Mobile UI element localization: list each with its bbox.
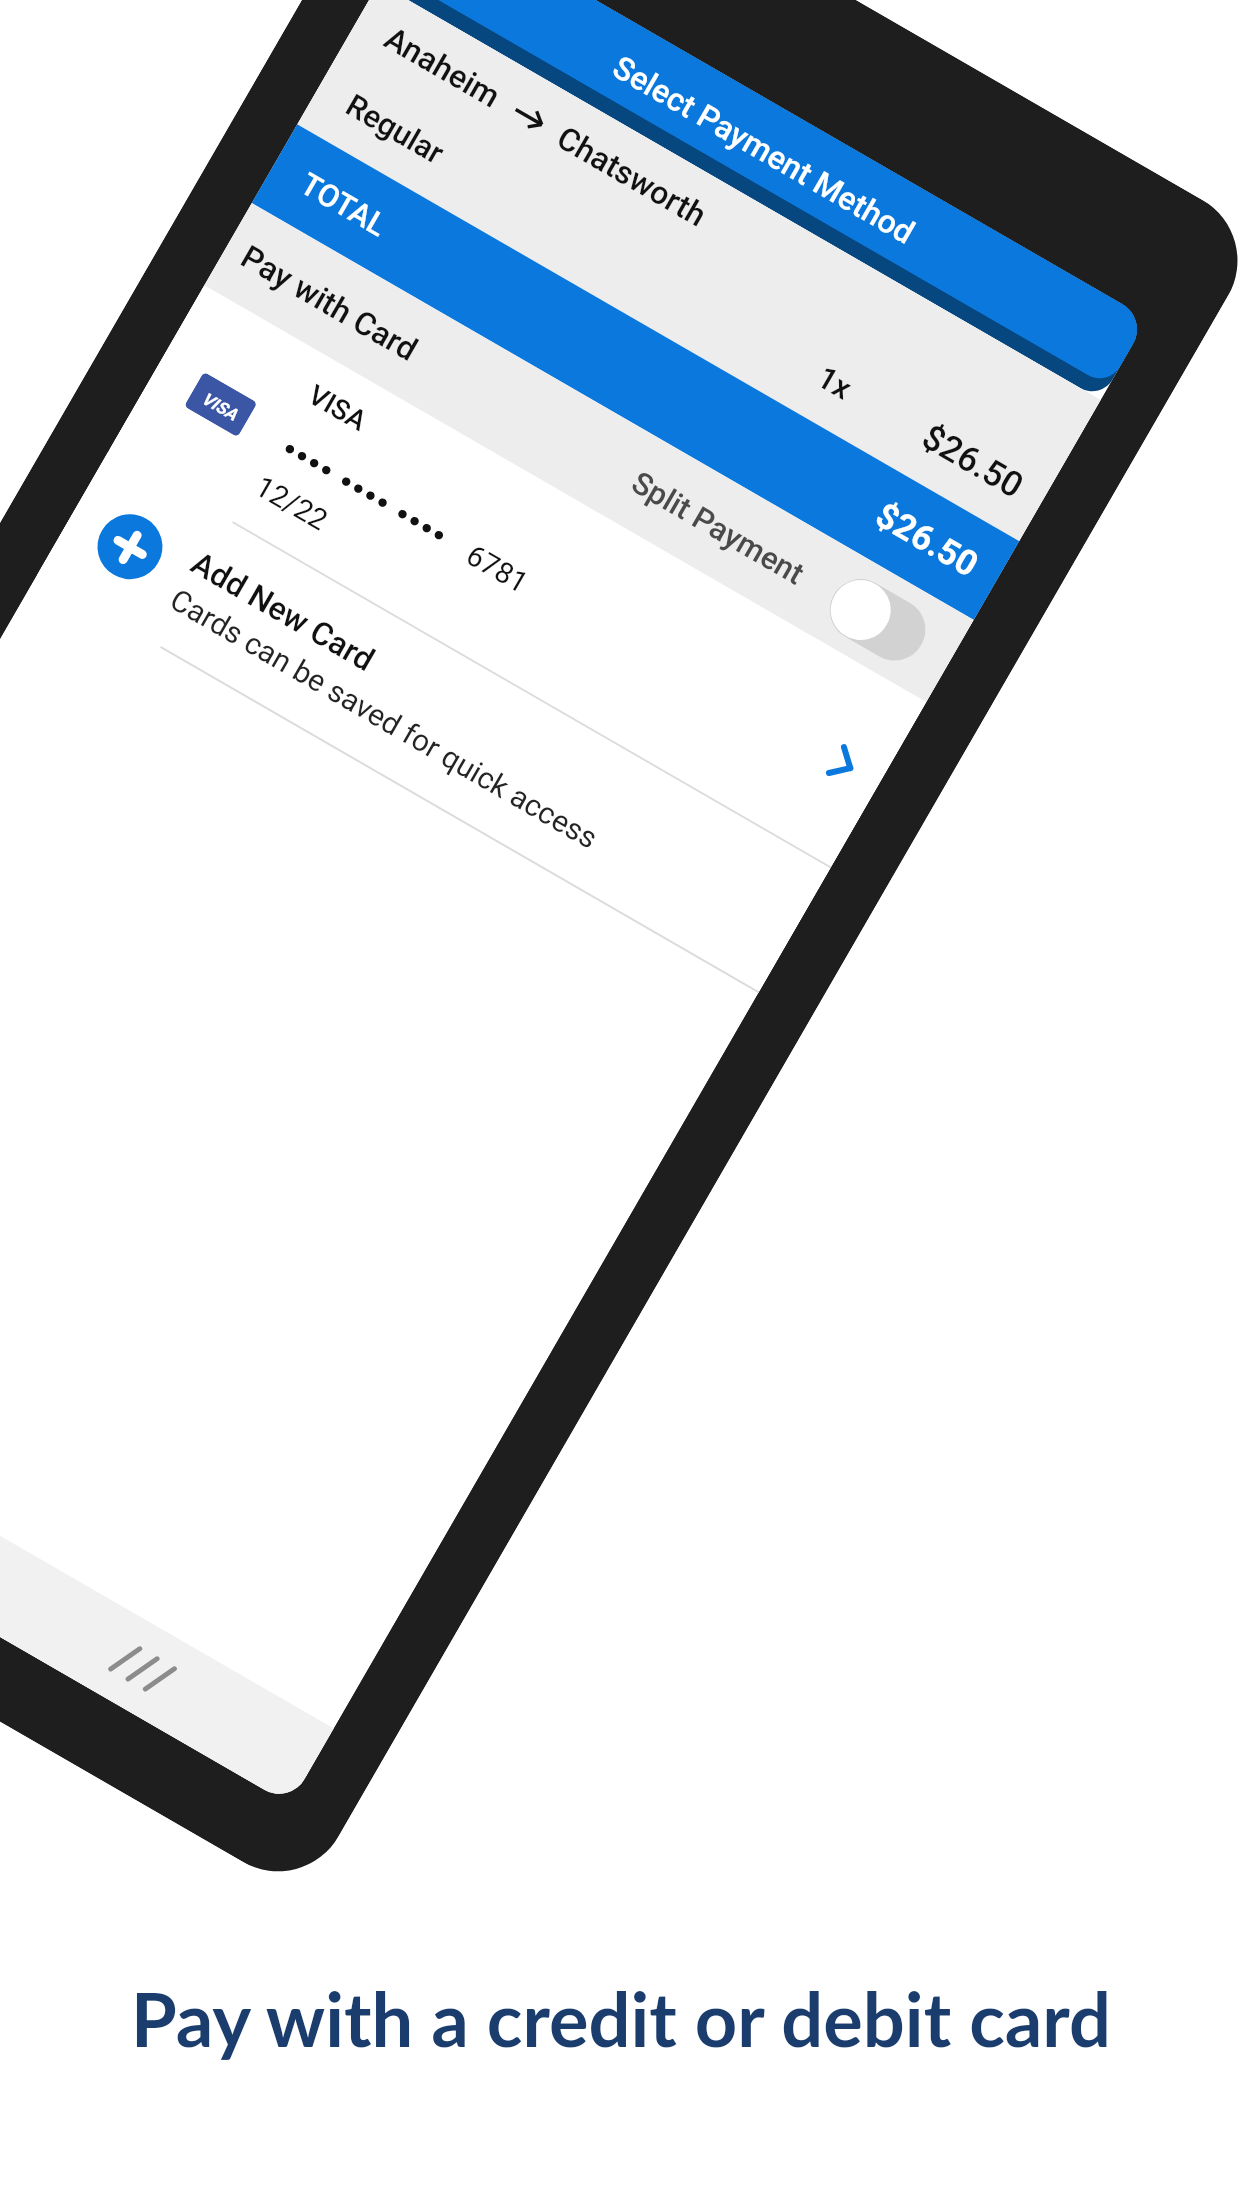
staticText: VISA [303,378,373,438]
staticText: 6781 [460,538,535,600]
button[interactable]: Add New Card [37,452,830,992]
staticText: VISA [198,388,241,424]
button[interactable]: Split payment toggle [818,568,937,672]
staticText: TOTAL [295,165,393,243]
staticText: $26.50 [915,416,1031,507]
staticText: Chatsworth [550,119,713,234]
staticText: Regular [340,87,451,171]
staticText: 12/22 [250,469,334,537]
staticText: Pay with Card [235,238,424,369]
staticText: Anaheim [378,19,507,115]
staticText: Cards can be saved for quick access [164,582,604,856]
staticText: Select Payment Method [606,48,921,252]
staticText: Add New Card [185,544,381,679]
button[interactable]: VISA [109,285,926,867]
other: Recent apps [104,1635,177,1700]
staticText: Split Payment [626,464,811,592]
staticText: $26.50 [869,495,985,586]
staticText: 1x [811,359,859,407]
staticText: Pay with a credit or debit card [0,1974,1242,2063]
